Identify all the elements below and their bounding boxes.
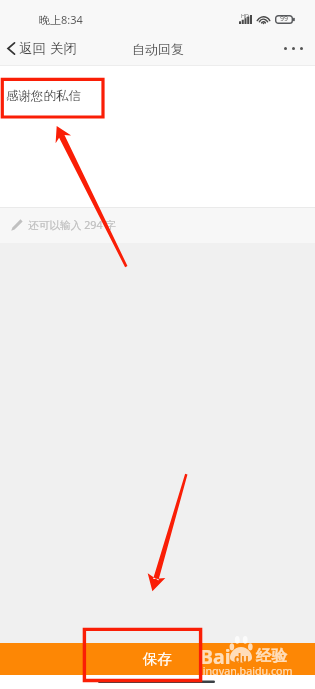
staticText: HD	[241, 12, 250, 19]
staticText: jingyan.baidu.com	[200, 664, 293, 679]
staticText: 还可以输入 294 字	[28, 218, 117, 233]
staticText: 感谢您的私信	[6, 88, 81, 104]
button[interactable]: 关闭	[48, 36, 81, 61]
staticText: 经验	[256, 646, 287, 666]
staticText: 自动回复	[132, 41, 184, 57]
button[interactable]: More options	[272, 39, 315, 58]
staticText: Bai	[200, 643, 231, 670]
staticText: 晚上8:34	[39, 12, 83, 27]
button[interactable]: 返回	[0, 36, 48, 61]
staticText: 99	[280, 14, 289, 24]
staticText: du	[234, 651, 249, 667]
staticText: 保存	[143, 650, 172, 668]
button[interactable]: 保存	[0, 643, 315, 675]
staticText: 返回	[19, 40, 46, 57]
